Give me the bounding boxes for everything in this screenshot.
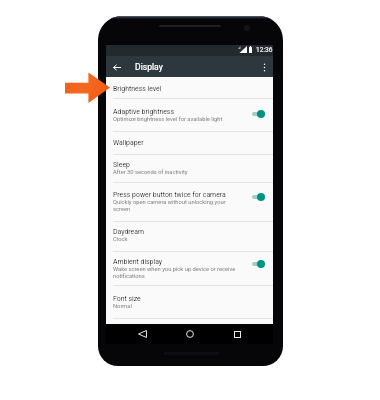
staticText: Display (135, 62, 163, 72)
button[interactable]: Brightness level (106, 77, 273, 99)
button[interactable]: Back (106, 57, 127, 77)
staticText: Quickly open camera without unlocking yo… (113, 199, 241, 213)
button[interactable]: Adaptive brightness (106, 99, 273, 132)
staticText: Daydream (113, 228, 145, 236)
button[interactable]: More options (255, 57, 273, 77)
button[interactable]: Toggle Ambient display (251, 258, 273, 270)
button[interactable]: Wallpaper (106, 132, 273, 155)
staticText: Font size (113, 295, 141, 303)
staticText: Adaptive brightness (113, 108, 174, 116)
staticText: Clock (113, 236, 128, 243)
staticText: Press power button twice for camera (113, 191, 226, 199)
button[interactable]: Press power button twice for camera (106, 183, 273, 222)
staticText: Optimize brightness level for available … (113, 116, 223, 123)
button[interactable]: Toggle Adaptive brightness (251, 108, 273, 120)
button[interactable]: Back (130, 324, 154, 344)
button[interactable]: Font size (106, 286, 273, 319)
button[interactable]: Toggle Press power button twice for came… (251, 191, 273, 203)
staticText: Wake screen when you pick up device or r… (113, 266, 241, 280)
staticText: Sleep (113, 161, 130, 169)
staticText: After 30 seconds of inactivity (113, 169, 188, 176)
staticText: 12:36 (256, 46, 273, 54)
button[interactable]: Recents (225, 324, 249, 344)
staticText: Normal (113, 303, 132, 310)
button[interactable]: Daydream (106, 222, 273, 252)
staticText: Wallpaper (113, 139, 144, 147)
staticText: Brightness level (113, 85, 162, 93)
button[interactable]: Ambient display (106, 252, 273, 286)
button[interactable]: Sleep (106, 155, 273, 183)
button[interactable]: Home (178, 324, 202, 344)
staticText: Ambient display (113, 258, 163, 266)
